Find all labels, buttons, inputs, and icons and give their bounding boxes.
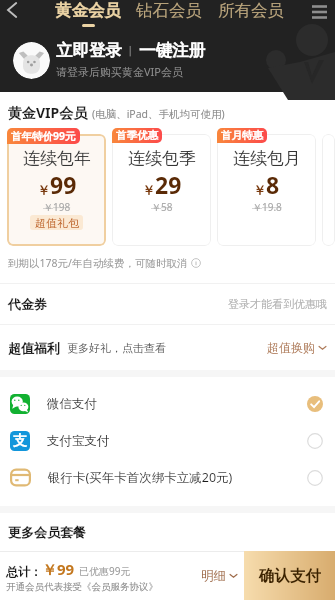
button[interactable]: 连续包月	[217, 134, 316, 246]
staticText: 更多会员套餐	[8, 524, 86, 540]
button[interactable]: 支	[0, 422, 335, 459]
button[interactable]: 黄金会员	[55, 0, 121, 27]
staticText: ￥	[253, 182, 266, 198]
staticText: 99	[50, 169, 77, 200]
button[interactable]: 更多会员套餐	[0, 513, 335, 550]
button[interactable]: 代金券	[0, 284, 335, 324]
staticText: ￥	[37, 182, 50, 198]
staticText: 超值福利	[8, 340, 60, 356]
staticText: ￥198	[43, 200, 71, 214]
staticText: 超值礼包	[35, 216, 79, 230]
staticText: 29	[155, 169, 182, 200]
staticText: 登录才能看到优惠哦	[228, 297, 327, 311]
button[interactable]: 连续包年	[7, 134, 106, 246]
staticText: 连续包年	[23, 148, 91, 169]
staticText: 到期以178元/年自动续费，可随时取消	[8, 256, 188, 270]
button[interactable]	[322, 134, 335, 246]
staticText: 支	[13, 432, 27, 450]
staticText: 连续包季	[128, 148, 196, 169]
staticText: 首年特价99元	[11, 129, 76, 143]
button[interactable]: 明细	[195, 551, 244, 600]
staticText: 支付宝支付	[47, 433, 110, 449]
button[interactable]: 钻石会员	[136, 0, 202, 27]
staticText: ￥19.8	[252, 200, 282, 214]
button[interactable]: 银行卡(买年卡首次绑卡立减20元)	[0, 459, 335, 496]
staticText: 首月特惠	[221, 129, 263, 142]
staticText: 代金券	[8, 296, 47, 312]
button[interactable]: 确认支付	[244, 551, 335, 600]
staticText: ￥99	[42, 559, 75, 579]
button[interactable]: 所有会员	[218, 0, 284, 27]
button[interactable]: 微信支付	[0, 385, 335, 422]
staticText: 总计：	[6, 564, 42, 579]
staticText: 首季优惠	[116, 129, 158, 142]
staticText: 一键注册	[139, 40, 205, 61]
staticText: 黄金会员	[55, 0, 121, 21]
staticText: 连续包月	[233, 148, 301, 169]
staticText: 开通会员代表接受《会员服务协议》	[6, 581, 158, 593]
staticText: 已优惠99元	[79, 564, 131, 578]
staticText: 所有会员	[218, 0, 284, 21]
staticText: 超值换购	[267, 340, 315, 355]
staticText: (电脑、iPad、手机均可使用)	[92, 107, 225, 121]
staticText: 8	[266, 169, 280, 200]
button[interactable]: 连续包季	[112, 134, 211, 246]
staticText: 黄金VIP会员	[8, 103, 88, 122]
staticText: 确认支付	[259, 566, 321, 586]
button[interactable]: 超值福利	[0, 325, 335, 370]
staticText: 立即登录	[56, 40, 122, 61]
button[interactable]: 返回	[0, 0, 24, 21]
staticText: 明细	[201, 568, 226, 584]
staticText: 银行卡(买年卡首次绑卡立减20元)	[48, 469, 233, 486]
staticText: ￥	[142, 182, 155, 198]
staticText: 微信支付	[47, 396, 97, 412]
staticText: ￥58	[151, 200, 173, 214]
staticText: 钻石会员	[136, 0, 202, 21]
staticText: 更多好礼，点击查看	[67, 341, 166, 355]
staticText: 请登录后购买黄金VIP会员	[56, 64, 183, 79]
staticText: 丨	[122, 43, 139, 58]
button[interactable]: 菜单	[307, 0, 331, 23]
